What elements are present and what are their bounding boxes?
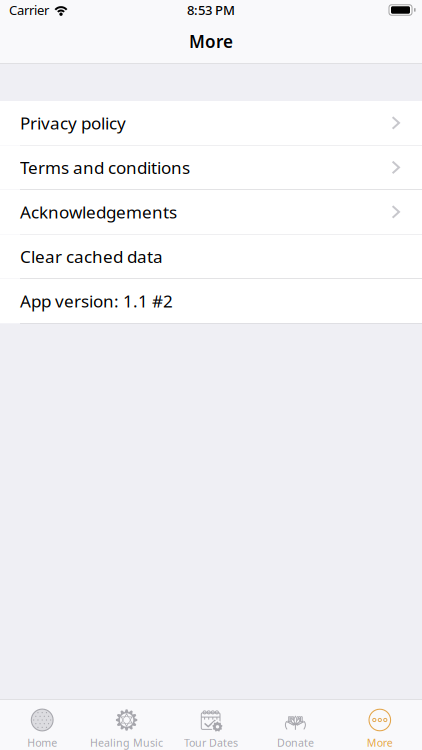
staticText: More bbox=[189, 30, 233, 53]
staticText: 8:53 PM bbox=[187, 1, 235, 19]
button[interactable]: Healing Music bbox=[84, 699, 169, 750]
staticText: More bbox=[367, 735, 393, 750]
button[interactable]: Donate bbox=[253, 699, 338, 750]
button[interactable]: Terms and conditions bbox=[0, 145, 422, 190]
staticText: Acknowledgements bbox=[20, 200, 177, 224]
button[interactable]: Tour Dates bbox=[169, 699, 253, 750]
button[interactable]: Privacy policy bbox=[0, 101, 422, 145]
staticText: Carrier bbox=[9, 1, 49, 19]
button[interactable]: Clear cached data bbox=[0, 234, 422, 279]
staticText: Privacy policy bbox=[20, 111, 126, 135]
staticText: Healing Music bbox=[90, 735, 163, 750]
staticText: Terms and conditions bbox=[20, 156, 190, 179]
button[interactable]: More bbox=[338, 699, 422, 750]
staticText: Home bbox=[27, 735, 57, 750]
staticText: Tour Dates bbox=[184, 735, 238, 750]
staticText: App version: 1.1 #2 bbox=[20, 289, 173, 313]
button[interactable]: App version: 1.1 #2 bbox=[0, 279, 422, 323]
button[interactable]: Home bbox=[0, 699, 84, 750]
button[interactable]: Acknowledgements bbox=[0, 190, 422, 234]
staticText: Donate bbox=[277, 735, 314, 750]
staticText: Clear cached data bbox=[20, 245, 163, 268]
